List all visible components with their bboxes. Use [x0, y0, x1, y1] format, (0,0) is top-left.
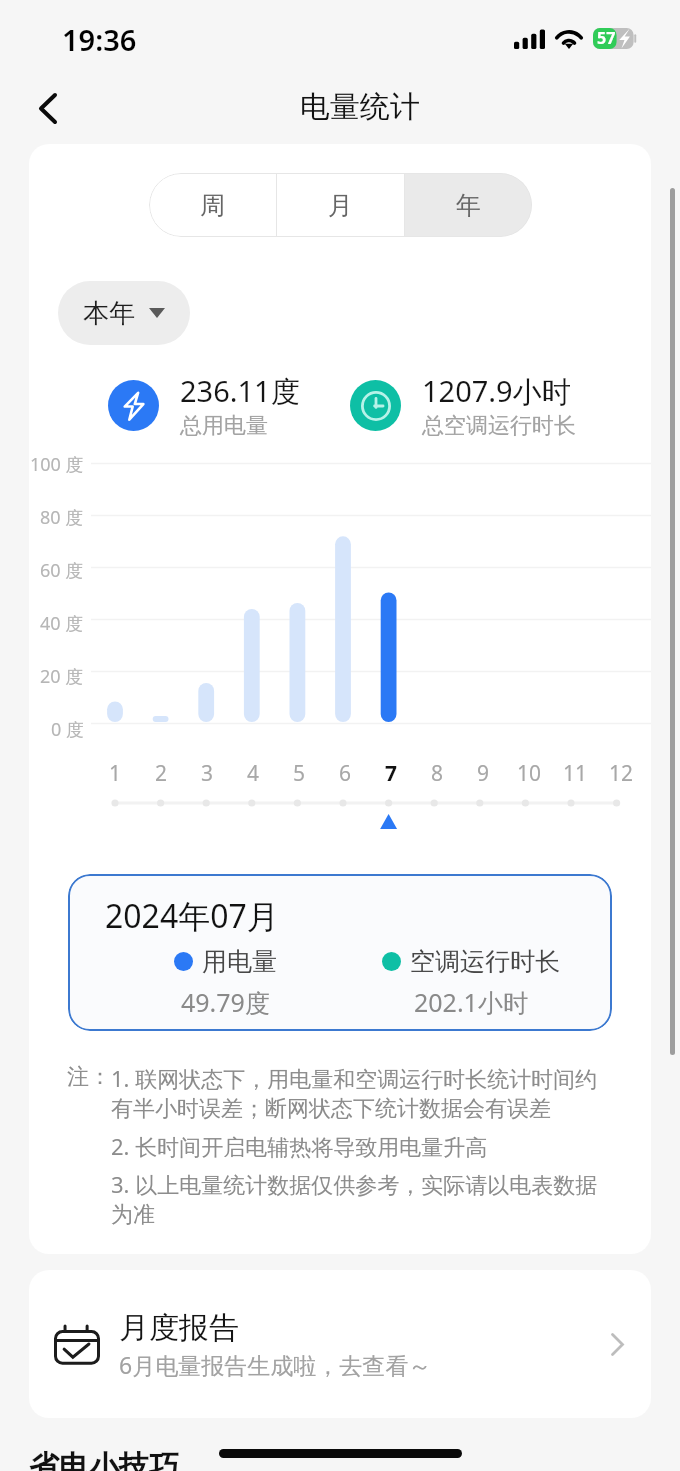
- staticText: 40 度: [40, 611, 84, 636]
- staticText: 总空调运行时长: [422, 412, 576, 440]
- button[interactable]: 本年: [58, 281, 190, 345]
- staticText: 1: [109, 759, 122, 788]
- staticText: 80 度: [40, 505, 84, 530]
- staticText: 9: [477, 759, 490, 788]
- button[interactable]: 月: [277, 173, 404, 237]
- staticText: 2. 长时间开启电辅热将导致用电量升高: [111, 1131, 488, 1161]
- staticText: 空调运行时长: [410, 946, 560, 977]
- staticText: 月: [328, 190, 353, 221]
- staticText: 236.11度: [180, 371, 300, 411]
- staticText: 57: [597, 27, 616, 48]
- staticText: 19:36: [62, 20, 137, 59]
- staticText: 总用电量: [180, 412, 268, 440]
- staticText: 本年: [83, 297, 135, 330]
- button[interactable]: 月度报告: [29, 1270, 651, 1418]
- staticText: 3. 以上电量统计数据仅供参考，实际请以电表数据为准: [111, 1169, 608, 1229]
- staticText: 月度报告: [119, 1309, 239, 1347]
- staticText: 周: [200, 190, 225, 221]
- staticText: 100 度: [30, 452, 84, 477]
- staticText: 11: [563, 759, 588, 788]
- staticText: 202.1小时: [414, 985, 528, 1019]
- staticText: 1207.9小时: [422, 371, 571, 411]
- staticText: 60 度: [40, 558, 84, 583]
- staticText: 1. 联网状态下，用电量和空调运行时长统计时间约有半小时误差；断网状态下统计数据…: [111, 1063, 608, 1123]
- staticText: 年: [456, 190, 481, 221]
- staticText: 用电量: [202, 946, 277, 977]
- staticText: 6月电量报告生成啦，去查看～: [119, 1349, 432, 1380]
- staticText: 5: [293, 759, 306, 788]
- staticText: 10: [517, 759, 542, 788]
- staticText: 电量统计: [300, 88, 420, 126]
- staticText: 2: [155, 759, 168, 788]
- staticText: 12: [609, 759, 634, 788]
- staticText: 0 度: [51, 717, 84, 742]
- staticText: 20 度: [40, 664, 84, 689]
- staticText: 2024年07月: [105, 894, 279, 938]
- staticText: 6: [339, 759, 352, 788]
- staticText: 3: [201, 759, 214, 788]
- staticText: 省电小技巧: [29, 1448, 179, 1471]
- staticText: 7: [385, 759, 398, 788]
- staticText: 49.79度: [181, 985, 270, 1019]
- button[interactable]: 年: [405, 173, 532, 237]
- button[interactable]: Back: [20, 80, 76, 136]
- staticText: 4: [247, 759, 260, 788]
- staticText: 注：: [67, 1063, 111, 1091]
- button[interactable]: 周: [149, 173, 276, 237]
- staticText: 8: [431, 759, 444, 788]
